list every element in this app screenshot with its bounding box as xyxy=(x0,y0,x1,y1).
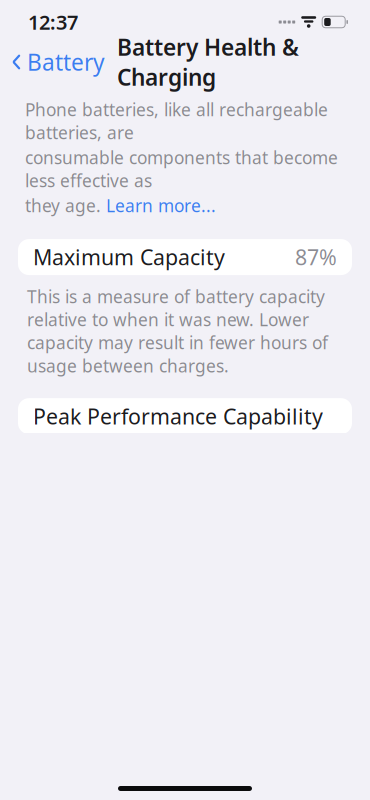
button[interactable]: Maximum Capacity xyxy=(18,239,352,275)
button[interactable]: Peak Performance Capability xyxy=(18,398,352,434)
button[interactable]: Battery xyxy=(0,41,105,83)
staticText: Learn more... xyxy=(106,194,216,217)
staticText: they age. xyxy=(25,194,106,217)
staticText: Peak Performance Capability xyxy=(33,402,323,430)
staticText: Battery xyxy=(27,47,105,77)
staticText: Phone batteries, like all rechargeable b… xyxy=(25,98,328,144)
staticText: Battery Health & Charging xyxy=(117,32,299,92)
staticText: This is a measure of battery capacity re… xyxy=(27,285,328,377)
button[interactable]: Learn more... xyxy=(106,194,216,217)
staticText: consumable components that become less e… xyxy=(25,146,338,192)
staticText: 87% xyxy=(295,243,337,271)
staticText: 12:37 xyxy=(28,9,78,35)
staticText: Maximum Capacity xyxy=(33,243,225,271)
